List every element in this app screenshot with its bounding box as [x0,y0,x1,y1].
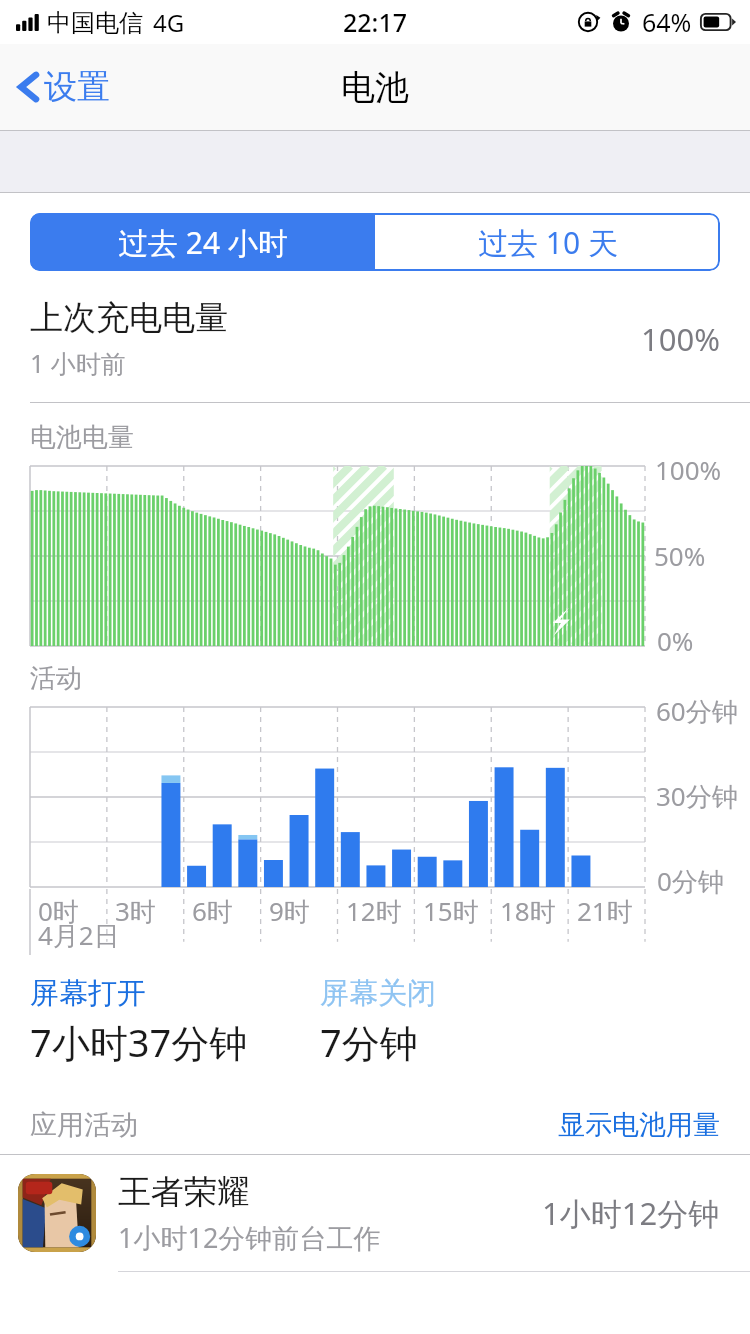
staticText: 9时 [269,893,310,929]
staticText: 64% [642,5,692,39]
staticText: 3时 [115,893,156,929]
staticText: 0分钟 [657,863,724,899]
button[interactable]: 上次充电电量 [30,297,720,380]
staticText: 过去 10 天 [478,222,618,263]
staticText: 设置 [44,66,110,108]
staticText: 显示电池用量 [558,1108,720,1142]
staticText: 0% [657,623,694,658]
staticText: 0时 [38,893,79,929]
staticText: 4月2日 [38,917,120,953]
staticText: 30分钟 [656,778,738,814]
button[interactable]: 显示电池用量 [558,1108,720,1142]
staticText: 电池 [341,66,409,109]
staticText: 60分钟 [656,693,738,729]
staticText: 12时 [346,893,402,929]
staticText: 15时 [423,893,479,929]
button[interactable]: 过去 24 小时 [30,213,375,271]
staticText: 应用活动 [30,1108,138,1142]
button[interactable]: 设置 [12,58,116,116]
staticText: 22:17 [343,5,408,39]
staticText: 7分钟 [320,1016,418,1068]
button[interactable]: 过去 10 天 [375,213,720,271]
staticText: 7小时37分钟 [30,1016,248,1068]
staticText: 6时 [192,893,233,929]
staticText: 1 小时前 [30,346,126,380]
other: 王者荣耀 app icon [18,1174,96,1252]
staticText: 电池电量 [30,421,134,454]
staticText: 100% [641,318,720,360]
staticText: 屏幕打开 [30,975,146,1012]
staticText: 上次充电电量 [30,297,228,339]
staticText: 4G [153,6,185,39]
button[interactable]: 王者荣耀 app icon [0,1155,750,1272]
staticText: 中国电信 [47,8,143,38]
staticText: 王者荣耀 [118,1171,250,1213]
staticText: 18时 [500,893,556,929]
staticText: 1小时12分钟前台工作 [118,1219,381,1256]
staticText: 100% [655,452,722,487]
staticText: 50% [654,538,706,573]
staticText: 过去 24 小时 [118,222,288,263]
staticText: 1小时12分钟 [542,1192,720,1234]
staticText: 活动 [30,662,82,695]
staticText: 屏幕关闭 [320,975,436,1012]
staticText: 21时 [577,893,633,929]
